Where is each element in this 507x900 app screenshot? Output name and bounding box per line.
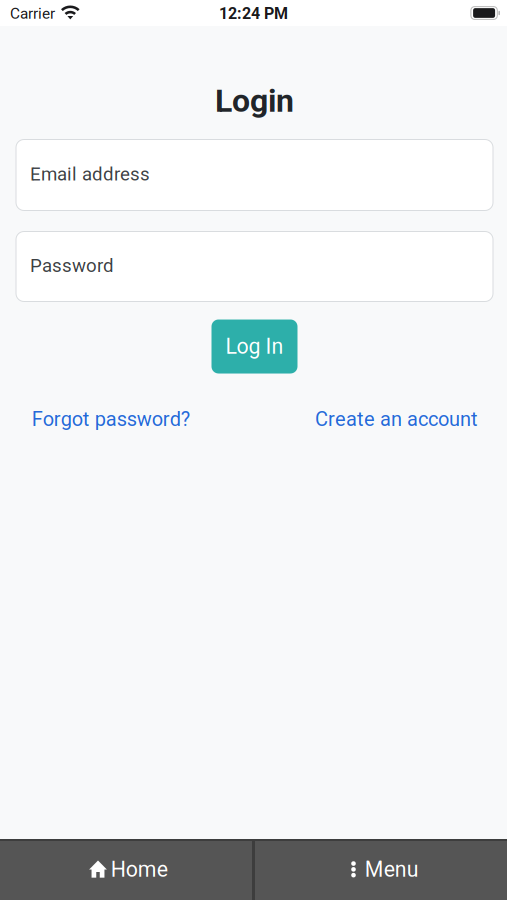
button[interactable]: Log In: [211, 319, 297, 373]
staticText: Carrier: [10, 4, 55, 22]
button[interactable]: Password: [16, 231, 493, 301]
staticText: Forgot password?: [32, 407, 190, 431]
staticText: Email address: [30, 163, 150, 185]
button[interactable]: Home: [0, 839, 252, 900]
button[interactable]: Menu: [255, 839, 507, 900]
staticText: Home: [111, 857, 168, 882]
staticText: Log In: [225, 334, 283, 359]
staticText: 12:24 PM: [219, 4, 288, 23]
staticText: Password: [30, 255, 114, 276]
button[interactable]: Forgot password?: [32, 407, 190, 431]
staticText: Create an account: [315, 407, 478, 431]
button[interactable]: Create an account: [315, 407, 478, 431]
staticText: Login: [215, 82, 294, 119]
staticText: Menu: [365, 857, 419, 882]
button[interactable]: Email address: [16, 139, 493, 210]
